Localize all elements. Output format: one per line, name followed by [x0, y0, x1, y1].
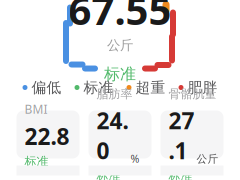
staticText: 标准 [96, 169, 120, 180]
button[interactable]: 脂肪率 [88, 110, 151, 158]
staticText: 脂肪率 [96, 87, 132, 101]
button[interactable]: 标准 [68, 76, 120, 98]
staticText: BMI [24, 101, 47, 117]
staticText: 公斤 [107, 37, 133, 53]
staticText: 超重 [135, 78, 165, 96]
button[interactable]: 超重 [120, 76, 172, 98]
staticText: 标准 [104, 64, 136, 84]
button[interactable]: 肥胖 [172, 76, 224, 98]
staticText: 标准 [24, 154, 48, 169]
staticText: 标准 [168, 169, 192, 180]
staticText: % [130, 151, 139, 166]
staticText: 24.0 [96, 105, 128, 166]
button[interactable]: BMI [16, 110, 79, 158]
staticText: 骨骼肌量 [168, 87, 216, 101]
staticText: 公斤 [196, 152, 218, 166]
staticText: 22.8 [24, 121, 69, 151]
staticText: 标准 [83, 78, 113, 96]
button[interactable]: 骨骼肌量 [160, 110, 223, 158]
staticText: 肥胖 [187, 78, 217, 96]
staticText: 67.55 [68, 0, 171, 36]
staticText: 27.1 [168, 105, 194, 166]
staticText: 偏低 [31, 78, 61, 96]
button[interactable]: 偏低 [16, 76, 68, 98]
